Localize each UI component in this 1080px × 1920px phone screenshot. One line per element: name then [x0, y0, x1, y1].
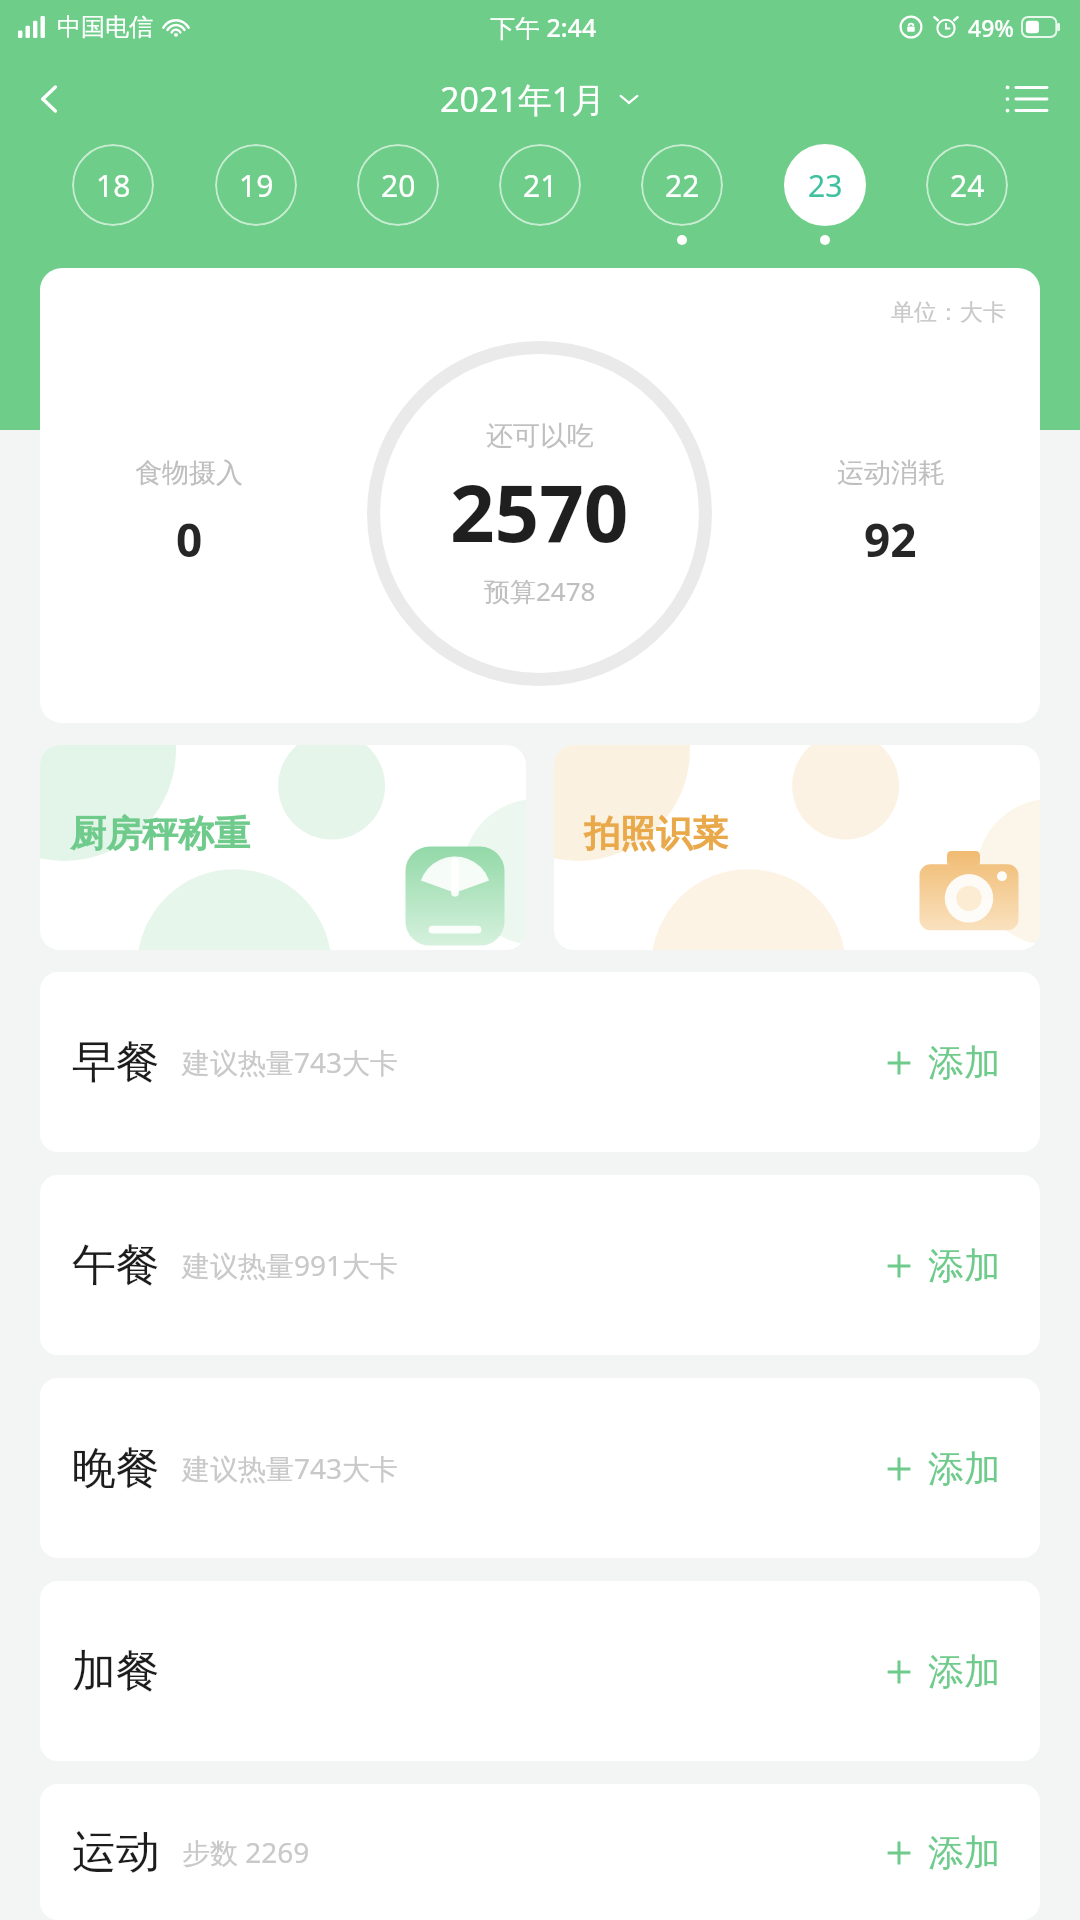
staticText: 添加 — [928, 1040, 1000, 1085]
button[interactable]: 23 — [784, 144, 866, 226]
staticText: 运动消耗 — [837, 456, 945, 490]
staticText: 20 — [381, 165, 416, 206]
button[interactable]: 午餐 — [40, 1175, 1040, 1355]
staticText: 添加 — [928, 1243, 1000, 1288]
staticText: 添加 — [928, 1830, 1000, 1875]
staticText: 晚餐 — [72, 1441, 160, 1496]
button[interactable]: 厨房秤称重 — [40, 745, 526, 950]
staticText: 19 — [239, 165, 274, 206]
button[interactable]: 19 — [215, 144, 297, 226]
staticText: 拍照识菜 — [584, 811, 728, 856]
button[interactable]: 添加 — [876, 1438, 1008, 1499]
staticText: 运动 — [72, 1825, 160, 1880]
button[interactable]: 添加 — [876, 1641, 1008, 1702]
staticText: 预算2478 — [484, 573, 596, 609]
button[interactable]: 运动 — [40, 1784, 1040, 1920]
staticText: 中国电信 — [57, 12, 153, 42]
staticText: 食物摄入 — [135, 456, 243, 490]
staticText: 0 — [176, 508, 203, 571]
button[interactable]: 晚餐 — [40, 1378, 1040, 1558]
staticText: 单位：大卡 — [891, 298, 1006, 327]
button[interactable]: 21 — [499, 144, 581, 226]
staticText: 23 — [808, 165, 843, 206]
button[interactable]: 加餐 — [40, 1581, 1040, 1761]
button[interactable]: 添加 — [876, 1822, 1008, 1883]
staticText: 厨房秤称重 — [70, 811, 250, 856]
staticText: 92 — [864, 508, 917, 571]
staticText: 午餐 — [72, 1238, 160, 1293]
staticText: 步数 2269 — [182, 1833, 310, 1871]
button[interactable]: 24 — [926, 144, 1008, 226]
staticText: 建议热量743大卡 — [182, 1449, 399, 1487]
staticText: 加餐 — [72, 1644, 160, 1699]
button[interactable]: 单位：大卡 — [40, 268, 1040, 723]
button[interactable]: 20 — [357, 144, 439, 226]
staticText: 还可以吃 — [486, 419, 594, 453]
staticText: 24 — [950, 165, 985, 206]
staticText: 下午 2:44 — [490, 10, 597, 44]
button[interactable]: Menu — [994, 67, 1058, 131]
button[interactable]: 18 — [72, 144, 154, 226]
button[interactable]: 早餐 — [40, 972, 1040, 1152]
staticText: 2021年1月 — [440, 76, 606, 122]
button[interactable]: 2021年1月 — [432, 72, 648, 126]
staticText: 添加 — [928, 1649, 1000, 1694]
button[interactable]: 添加 — [876, 1235, 1008, 1296]
staticText: 建议热量991大卡 — [182, 1246, 399, 1284]
button[interactable]: Back — [18, 67, 82, 131]
staticText: 早餐 — [72, 1035, 160, 1090]
staticText: 建议热量743大卡 — [182, 1043, 399, 1081]
button[interactable]: 拍照识菜 — [554, 745, 1040, 950]
staticText: 22 — [665, 165, 700, 206]
staticText: 49% — [968, 12, 1014, 43]
staticText: 18 — [96, 165, 131, 206]
staticText: 21 — [523, 165, 558, 206]
button[interactable]: 22 — [641, 144, 723, 226]
button[interactable]: 添加 — [876, 1032, 1008, 1093]
staticText: 2570 — [450, 459, 629, 565]
staticText: 添加 — [928, 1446, 1000, 1491]
